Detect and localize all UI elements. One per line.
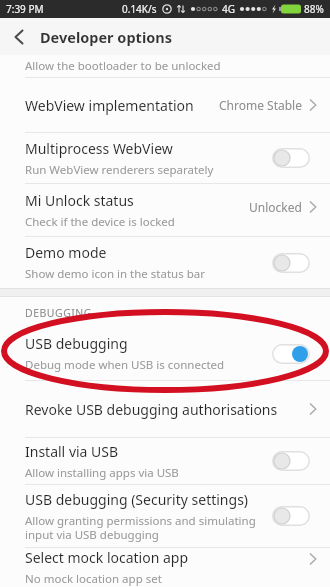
staticText: WebView implementation xyxy=(25,96,194,115)
staticText: 0.14K/s xyxy=(122,2,157,16)
button[interactable] xyxy=(14,29,24,45)
staticText: Check if the device is locked xyxy=(25,214,175,230)
staticText: Allow granting permissions and simulatin… xyxy=(25,513,258,542)
staticText: Run WebView renderers separately xyxy=(25,162,214,178)
staticText: 88% xyxy=(304,2,324,16)
staticText: 4G xyxy=(222,2,235,16)
button[interactable]: USB debugging (Security settings) xyxy=(0,485,330,547)
button[interactable]: Allow the bootloader to be unlocked xyxy=(0,55,330,77)
staticText: Chrome Stable xyxy=(219,97,302,113)
staticText: Show demo icon in the status bar xyxy=(25,266,205,282)
button[interactable]: Demo mode xyxy=(0,237,330,288)
staticText: Unlocked xyxy=(249,199,302,215)
staticText: USB debugging xyxy=(25,334,128,353)
staticText: Debug mode when USB is connected xyxy=(25,357,225,373)
staticText: No mock location app set xyxy=(25,571,162,587)
button[interactable]: USB debugging xyxy=(0,327,330,380)
staticText: Allow installing apps via USB xyxy=(25,465,179,481)
staticText: USB debugging (Security settings) xyxy=(25,490,249,509)
staticText: Mi Unlock status xyxy=(25,191,134,210)
staticText: Revoke USB debugging authorisations xyxy=(25,400,278,419)
staticText: 7:39 PM xyxy=(6,2,44,16)
button[interactable]: Select mock location app xyxy=(0,548,330,587)
staticText: DEBUGGING xyxy=(25,306,92,320)
button[interactable]: WebView implementation xyxy=(0,78,330,132)
staticText: Multiprocess WebView xyxy=(25,139,173,158)
staticText: Demo mode xyxy=(25,243,107,262)
button[interactable]: Install via USB xyxy=(0,438,330,484)
staticText: Developer options xyxy=(40,27,172,47)
button[interactable]: Multiprocess WebView xyxy=(0,133,330,183)
staticText: Allow the bootloader to be unlocked xyxy=(25,58,221,74)
staticText: Install via USB xyxy=(25,442,119,461)
button[interactable]: Mi Unlock status xyxy=(0,184,330,236)
button[interactable]: Revoke USB debugging authorisations xyxy=(0,381,330,437)
staticText: Select mock location app xyxy=(25,548,189,567)
